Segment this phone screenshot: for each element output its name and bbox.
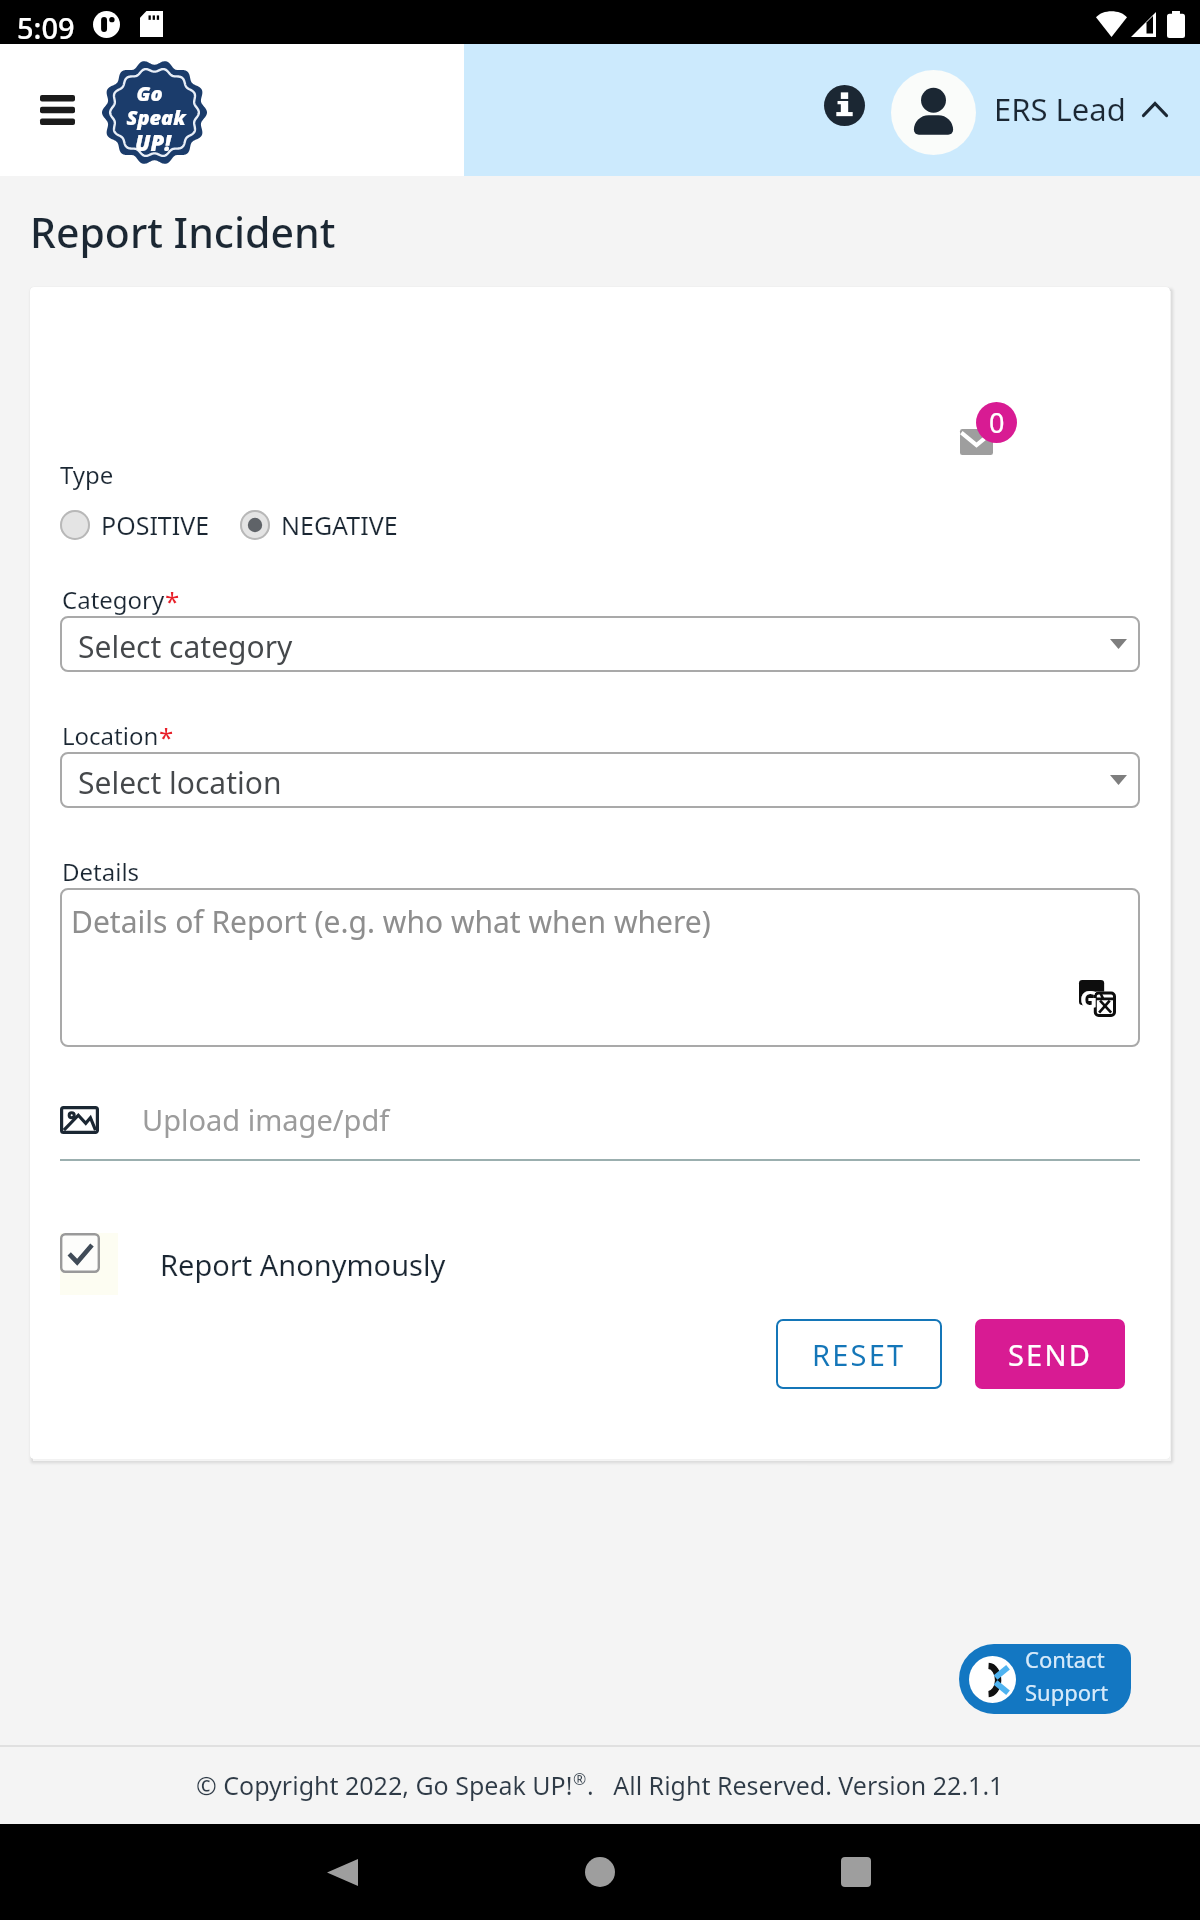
button[interactable]: Go Speak UP logo bbox=[102, 60, 207, 165]
staticText: Report Incident bbox=[30, 204, 336, 260]
button[interactable]: Messages bbox=[946, 402, 1016, 454]
staticText: 0 bbox=[989, 404, 1005, 441]
staticText: NEGATIVE bbox=[281, 508, 398, 542]
button[interactable]: POSITIVE bbox=[60, 508, 210, 542]
button[interactable]: Menu bbox=[28, 83, 86, 137]
staticText: Location bbox=[62, 719, 159, 752]
staticText: * bbox=[159, 719, 174, 754]
staticText: Upload image/pdf bbox=[142, 1100, 390, 1139]
staticText: POSITIVE bbox=[101, 508, 210, 542]
staticText: Details bbox=[62, 855, 140, 888]
button[interactable]: Back bbox=[216, 1824, 472, 1920]
button[interactable]: Details of Report (e.g. who what when wh… bbox=[60, 888, 1140, 1047]
staticText: Speak bbox=[126, 104, 186, 131]
staticText: * bbox=[165, 583, 180, 618]
staticText: Select location bbox=[78, 762, 282, 803]
button[interactable]: Select category bbox=[60, 616, 1140, 672]
button[interactable]: Report Anonymously bbox=[60, 1233, 446, 1295]
staticText: Select category bbox=[78, 626, 293, 667]
button[interactable]: Contact bbox=[959, 1644, 1131, 1714]
staticText: Category bbox=[62, 583, 165, 616]
staticText: SEND bbox=[1008, 1335, 1093, 1374]
button[interactable]: RESET bbox=[776, 1319, 942, 1389]
button[interactable]: Home bbox=[472, 1824, 728, 1920]
staticText: ERS Lead bbox=[994, 88, 1126, 130]
staticText: UP! bbox=[135, 127, 171, 157]
staticText: . All Right Reserved. Version 22.1.1 bbox=[587, 1768, 1004, 1802]
staticText: Report Anonymously bbox=[160, 1245, 446, 1284]
button[interactable]: Account bbox=[891, 70, 976, 155]
button[interactable]: Select location bbox=[60, 752, 1140, 808]
button[interactable]: Upload image/pdf bbox=[60, 1100, 390, 1139]
button[interactable]: Information bbox=[816, 77, 872, 133]
staticText: Contact bbox=[1025, 1644, 1105, 1674]
staticText: 5:09 bbox=[17, 8, 75, 47]
button[interactable]: Recent apps bbox=[728, 1824, 984, 1920]
staticText: RESET bbox=[812, 1335, 906, 1374]
button[interactable]: ERS Lead bbox=[990, 84, 1172, 134]
button[interactable]: Translate bbox=[1079, 980, 1116, 1017]
staticText: ® bbox=[573, 1768, 587, 1790]
staticText: G bbox=[1080, 982, 1098, 1015]
button[interactable]: NEGATIVE bbox=[240, 508, 398, 542]
staticText: Details of Report (e.g. who what when wh… bbox=[71, 901, 711, 942]
staticText: Go bbox=[136, 80, 163, 107]
staticText: Support bbox=[1025, 1677, 1109, 1707]
button[interactable]: SEND bbox=[975, 1319, 1125, 1389]
staticText: © Copyright 2022, Go Speak UP! bbox=[196, 1768, 573, 1802]
staticText: Type bbox=[60, 458, 114, 491]
